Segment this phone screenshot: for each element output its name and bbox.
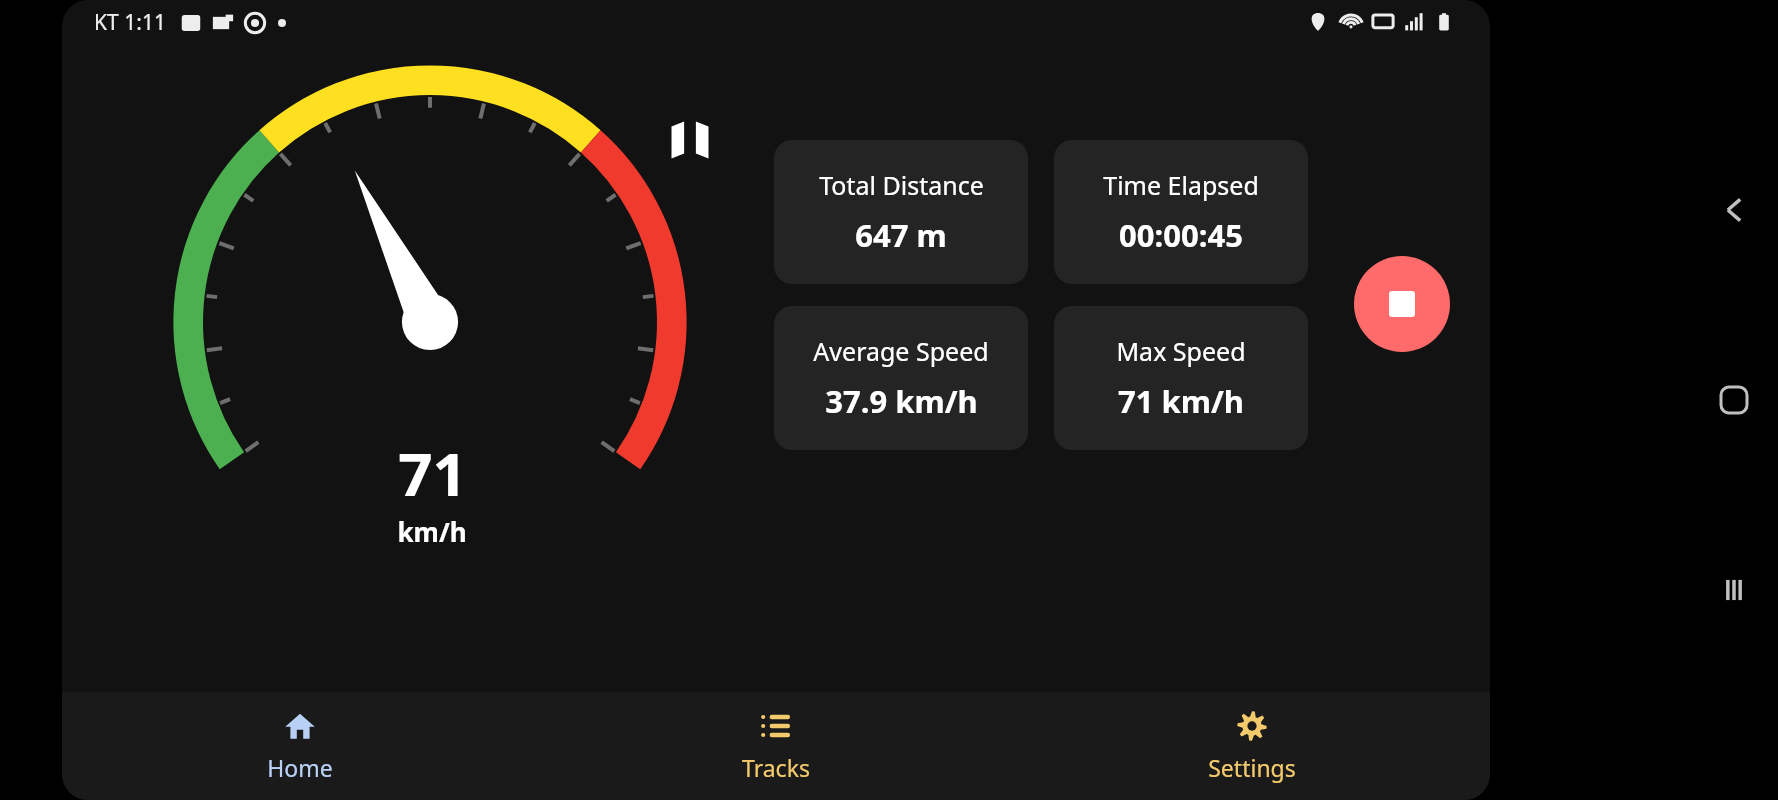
staticText: Home (267, 752, 333, 783)
button[interactable]: Home (62, 692, 538, 800)
button[interactable]: Average Speed (774, 306, 1028, 450)
staticText: km/h (397, 514, 467, 549)
staticText: Average Speed (813, 334, 989, 368)
staticText: Tracks (742, 752, 810, 783)
button[interactable]: Recents (1704, 560, 1764, 620)
staticText: 647 m (855, 214, 947, 256)
staticText: 00:00:45 (1119, 214, 1243, 256)
staticText: Time Elapsed (1103, 168, 1259, 202)
button[interactable]: Settings (1014, 692, 1490, 800)
button[interactable]: Time Elapsed (1054, 140, 1308, 284)
staticText: Settings (1208, 752, 1296, 783)
staticText: 71 (398, 432, 467, 514)
staticText: KT 1:11 (94, 8, 166, 37)
button[interactable]: Total Distance (774, 140, 1028, 284)
button[interactable]: Max Speed (1054, 306, 1308, 450)
staticText: 71 km/h (1118, 380, 1244, 422)
button[interactable]: Back (1704, 180, 1764, 240)
button[interactable]: Stop (1354, 256, 1450, 352)
button[interactable]: Tracks (538, 692, 1014, 800)
staticText: 37.9 km/h (825, 380, 978, 422)
staticText: Max Speed (1116, 334, 1246, 368)
button[interactable]: Home (1704, 370, 1764, 430)
staticText: Total Distance (819, 168, 984, 202)
button[interactable]: Map (662, 112, 718, 168)
